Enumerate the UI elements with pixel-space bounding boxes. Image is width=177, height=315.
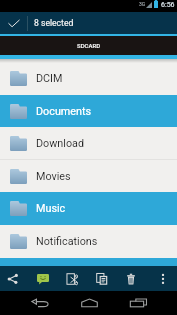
button[interactable]: Music [0,192,177,225]
button[interactable]: Notifications [0,225,177,258]
staticText: 3G [139,1,146,7]
staticText: 6:56 [161,1,175,9]
button[interactable]: Send message [28,266,57,291]
button[interactable]: Documents [0,95,177,127]
staticText: Documents [36,105,92,118]
staticText: DCIM [36,72,63,85]
staticText: Download [36,137,85,150]
button[interactable]: DCIM [0,62,177,95]
button[interactable]: Copy [87,266,116,291]
button[interactable]: More options [148,266,177,291]
button[interactable]: Delete [116,266,145,291]
button[interactable]: SDCARD [0,36,177,55]
button[interactable]: Back [14,291,64,315]
button[interactable]: Share [0,266,27,291]
button[interactable]: Done [0,12,27,34]
button[interactable]: Recent apps [113,291,163,315]
staticText: SDCARD [77,42,101,49]
staticText: 8 selected [34,18,74,28]
staticText: Music [36,202,66,215]
button[interactable]: Home [64,291,114,315]
button[interactable]: Download [0,127,177,160]
button[interactable]: Movies [0,160,177,192]
staticText: Movies [36,170,71,183]
button[interactable]: Cut [57,266,86,291]
staticText: Notifications [36,235,98,248]
